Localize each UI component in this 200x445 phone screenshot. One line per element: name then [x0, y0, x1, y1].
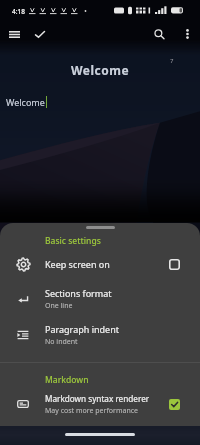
button[interactable]: Toggle	[164, 394, 184, 414]
staticText: Basic settings	[45, 235, 101, 247]
button[interactable]: Keep screen on	[0, 249, 200, 279]
button[interactable]: Toggle	[164, 254, 184, 274]
staticText: May cost more performance	[45, 406, 139, 416]
staticText: Markdown syntax renderer	[45, 393, 150, 404]
button[interactable]: Markdown syntax renderer	[0, 389, 200, 419]
button[interactable]: Menu	[2, 22, 26, 46]
staticText: No indent	[45, 337, 78, 347]
staticText: 4:18	[12, 7, 25, 16]
staticText: Keep screen on	[45, 258, 110, 270]
staticText: Welcome	[71, 62, 130, 78]
staticText: Markdown	[45, 374, 89, 386]
button[interactable]: Sections format	[0, 284, 200, 314]
button[interactable]: Paragraph indent	[0, 320, 200, 350]
staticText: Paragraph indent	[45, 323, 119, 335]
button[interactable]: Done	[28, 22, 52, 46]
staticText: One line	[45, 301, 73, 311]
staticText: Sections format	[45, 287, 112, 299]
staticText: Welcome	[6, 96, 45, 108]
button[interactable]: Search	[147, 22, 171, 46]
button[interactable]: More options	[175, 22, 199, 46]
staticText: 7	[170, 57, 174, 65]
